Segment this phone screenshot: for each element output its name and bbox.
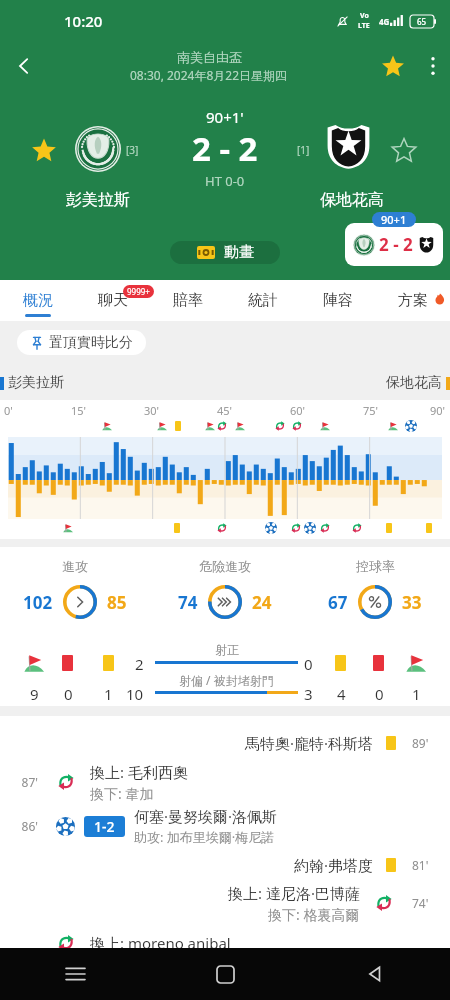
button[interactable]: 約翰·弗塔度 bbox=[0, 850, 450, 880]
staticText: 射偏 / 被封堵射門 bbox=[179, 672, 274, 688]
staticText: 馬特奧·龐特·科斯塔 bbox=[245, 733, 374, 753]
staticText: 90+1 bbox=[381, 212, 407, 227]
button[interactable]: Back bbox=[0, 42, 48, 90]
staticText: 0 bbox=[64, 684, 73, 704]
staticText: 75' bbox=[363, 403, 379, 418]
staticText: 換下: 韋加 bbox=[90, 784, 154, 803]
staticText: 0 bbox=[375, 684, 384, 704]
button[interactable]: 賠率 bbox=[150, 280, 225, 321]
staticText: 陣容 bbox=[323, 291, 353, 310]
staticText: 1-2 bbox=[94, 817, 115, 836]
staticText: 進攻 bbox=[62, 558, 88, 574]
button[interactable]: Favorite home team bbox=[31, 137, 57, 163]
staticText: 換下: 格裏高爾 bbox=[268, 905, 360, 924]
staticText: 87' bbox=[12, 774, 38, 790]
staticText: 0' bbox=[4, 403, 13, 418]
staticText: Vo bbox=[360, 11, 369, 21]
staticText: 85 bbox=[107, 591, 127, 614]
staticText: 彭美拉斯 bbox=[66, 190, 130, 210]
button[interactable]: Recent apps bbox=[0, 948, 150, 1000]
button[interactable]: 馬特奧·龐特·科斯塔 bbox=[0, 728, 450, 758]
staticText: 1 bbox=[104, 684, 113, 704]
staticText: [1] bbox=[297, 143, 310, 157]
staticText: 統計 bbox=[248, 291, 278, 310]
staticText: 助攻: 加布里埃爾·梅尼諾 bbox=[134, 828, 275, 846]
staticText: 90' bbox=[430, 403, 446, 418]
staticText: 45' bbox=[217, 403, 233, 418]
button[interactable]: 換上: 達尼洛·巴博薩 bbox=[0, 881, 450, 925]
staticText: 30' bbox=[144, 403, 160, 418]
button[interactable]: 動畫 bbox=[170, 241, 280, 264]
staticText: 彭美拉斯 bbox=[8, 374, 64, 392]
staticText: 射正 bbox=[215, 642, 239, 657]
staticText: 2 - 2 bbox=[192, 126, 258, 171]
staticText: 換上: 毛利西奧 bbox=[90, 762, 188, 782]
staticText: 南美自由盃 bbox=[177, 49, 242, 65]
button[interactable]: 概況 bbox=[0, 280, 75, 321]
staticText: HT 0-0 bbox=[205, 172, 245, 190]
staticText: 08:30, 2024年8月22日星期四 bbox=[130, 67, 288, 83]
staticText: 1 bbox=[412, 684, 421, 704]
staticText: 4G bbox=[379, 16, 390, 27]
staticText: 24 bbox=[252, 591, 272, 614]
button[interactable]: 87' bbox=[0, 760, 450, 804]
staticText: 概況 bbox=[23, 291, 53, 310]
staticText: 置頂實時比分 bbox=[49, 334, 133, 352]
button[interactable]: Favorite bbox=[370, 43, 416, 89]
staticText: 15' bbox=[71, 403, 87, 418]
staticText: 89' bbox=[412, 735, 438, 751]
staticText: 2 - 2 bbox=[379, 233, 413, 256]
staticText: 賠率 bbox=[173, 291, 203, 310]
button[interactable]: 方案 bbox=[375, 280, 450, 321]
staticText: 60' bbox=[290, 403, 306, 418]
staticText: 2 bbox=[135, 654, 144, 674]
staticText: 9 bbox=[30, 684, 39, 704]
staticText: 90+1' bbox=[206, 107, 244, 127]
staticText: 3 bbox=[304, 684, 313, 704]
staticText: 86' bbox=[12, 818, 38, 834]
staticText: 控球率 bbox=[356, 558, 395, 574]
staticText: 約翰·弗塔度 bbox=[294, 855, 374, 875]
staticText: 保地花高 bbox=[320, 190, 384, 210]
button[interactable]: More options bbox=[416, 49, 450, 83]
staticText: 危險進攻 bbox=[199, 558, 251, 574]
button[interactable]: 統計 bbox=[225, 280, 300, 321]
staticText: 換上: 達尼洛·巴博薩 bbox=[228, 883, 360, 903]
button[interactable]: Favorite away team bbox=[391, 137, 417, 163]
button[interactable]: Home bbox=[150, 948, 300, 1000]
button[interactable]: 陣容 bbox=[300, 280, 375, 321]
staticText: 74' bbox=[412, 895, 438, 911]
staticText: 保地花高 bbox=[386, 374, 442, 392]
staticText: 102 bbox=[23, 591, 53, 614]
staticText: 33 bbox=[402, 591, 422, 614]
staticText: 10 bbox=[126, 684, 144, 704]
staticText: 何塞·曼努埃爾·洛佩斯 bbox=[134, 806, 278, 826]
staticText: 67 bbox=[328, 591, 348, 614]
staticText: 聊天 bbox=[98, 291, 128, 310]
button[interactable]: Back bbox=[300, 948, 450, 1000]
button[interactable]: 聊天 bbox=[75, 280, 150, 321]
staticText: 74 bbox=[178, 591, 198, 614]
button[interactable]: 置頂實時比分 bbox=[17, 330, 146, 355]
staticText: LTE bbox=[358, 21, 370, 31]
button[interactable]: 86' bbox=[0, 804, 450, 848]
staticText: 81' bbox=[412, 857, 438, 873]
staticText: 10:20 bbox=[64, 11, 103, 31]
staticText: 動畫 bbox=[224, 243, 254, 262]
staticText: 換上: moreno anibal bbox=[90, 933, 231, 953]
staticText: 方案 bbox=[398, 291, 428, 310]
staticText: [3] bbox=[126, 143, 139, 157]
button[interactable]: 2 - 2 bbox=[345, 223, 443, 266]
staticText: 4 bbox=[337, 684, 346, 704]
staticText: 9999+ bbox=[127, 286, 150, 297]
staticText: 0 bbox=[304, 654, 313, 674]
staticText: 65 bbox=[417, 16, 427, 27]
